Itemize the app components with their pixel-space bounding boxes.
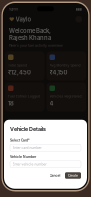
button[interactable]: Cancel — [48, 172, 62, 179]
button[interactable]: Vehicles Registered — [46, 82, 86, 111]
staticText: ₹4,150 — [49, 69, 67, 76]
staticText: 18 — [8, 100, 14, 107]
staticText: Vaylo — [15, 16, 31, 23]
staticText: Enter card number — [12, 146, 41, 150]
staticText: ▮▮▮ — [76, 7, 82, 11]
staticText: ₹12,450 — [8, 69, 31, 76]
button[interactable]: Total Spend — [5, 51, 44, 80]
staticText: Enter vehicle number — [12, 162, 46, 166]
button[interactable]: Enter card number — [10, 144, 81, 151]
staticText: ♥ — [9, 16, 14, 22]
button[interactable]: Enter vehicle number — [10, 161, 81, 168]
staticText: 4 — [49, 100, 53, 107]
button[interactable]: Avg Monthly Spend — [46, 51, 86, 80]
button[interactable]: Fuel Entries Logged — [5, 82, 44, 111]
staticText: Create — [68, 173, 78, 177]
staticText: 12:11 — [9, 7, 18, 11]
staticText: Cancel — [49, 173, 60, 177]
staticText: Vehicles Registered — [49, 94, 81, 98]
staticText: Select Card* — [10, 138, 30, 142]
staticText: Fuel Entries Logged — [8, 94, 40, 98]
staticText: Vehicle Number — [10, 155, 36, 159]
staticText: Avg Monthly Spend — [49, 63, 80, 67]
button[interactable]: Create — [65, 172, 81, 179]
staticText: Total Spend — [8, 63, 27, 67]
staticText: Welcome Back, Rajesh Khanna — [9, 27, 51, 41]
staticText: Vehicle Details — [10, 126, 46, 132]
staticText: Here's your fuel activity overview — [9, 43, 63, 47]
